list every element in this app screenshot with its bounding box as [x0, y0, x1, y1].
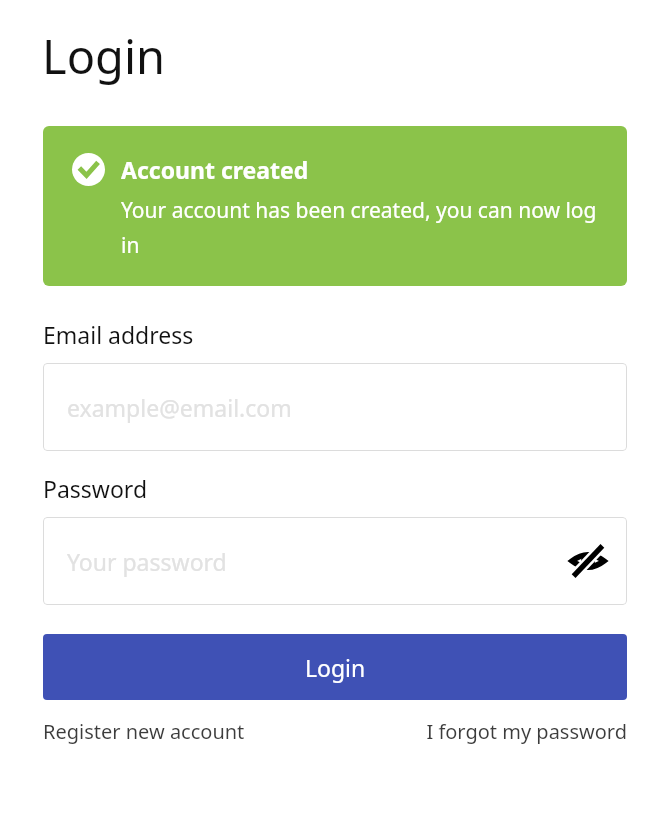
button[interactable]: Login — [43, 634, 627, 700]
staticText: Login — [42, 24, 166, 88]
staticText: Your password — [67, 546, 227, 577]
button[interactable]: Account created — [43, 126, 627, 286]
staticText: Login — [305, 652, 366, 683]
staticText: I forgot my password — [426, 718, 627, 745]
staticText: Register new account — [43, 718, 245, 745]
staticText: Email address — [43, 319, 194, 350]
button[interactable]: Register new account — [43, 718, 245, 745]
button[interactable]: example@email.com — [43, 363, 627, 451]
staticText: Your account has been created, you can n… — [121, 196, 603, 260]
button[interactable]: Your password — [43, 517, 627, 605]
staticText: example@email.com — [67, 392, 292, 423]
staticText: Account created — [121, 154, 309, 185]
button[interactable]: I forgot my password — [426, 718, 627, 745]
staticText: Password — [43, 473, 148, 504]
button[interactable]: Show password — [568, 541, 608, 581]
